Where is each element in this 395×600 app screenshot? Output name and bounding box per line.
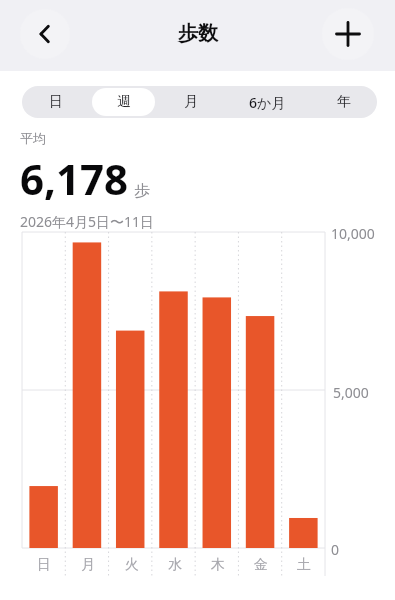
staticText: 0: [331, 540, 340, 559]
staticText: 年: [337, 93, 351, 111]
staticText: 月: [81, 556, 95, 574]
staticText: 平均: [20, 130, 46, 146]
button[interactable]: Back: [20, 9, 70, 59]
staticText: 日: [37, 556, 51, 574]
button[interactable]: 日: [24, 88, 88, 116]
button[interactable]: 6か月: [226, 88, 308, 116]
button[interactable]: 年: [312, 88, 375, 116]
staticText: 月: [184, 93, 198, 111]
staticText: 火: [125, 556, 139, 574]
staticText: 歩数: [178, 21, 218, 46]
staticText: 5,000: [333, 383, 369, 402]
button[interactable]: 月: [159, 88, 222, 116]
staticText: 土: [297, 556, 311, 574]
staticText: 日: [49, 93, 63, 111]
staticText: 2026年4月5日〜11日: [20, 212, 155, 231]
staticText: 10,000: [331, 224, 375, 243]
staticText: 6か月: [249, 93, 286, 112]
button[interactable]: Add: [322, 8, 374, 60]
staticText: 水: [168, 556, 182, 574]
button[interactable]: 週: [92, 88, 155, 116]
staticText: 6,178: [20, 150, 129, 207]
staticText: 金: [254, 556, 268, 574]
staticText: 木: [211, 556, 225, 574]
staticText: 歩: [134, 181, 150, 201]
staticText: 週: [117, 93, 131, 111]
